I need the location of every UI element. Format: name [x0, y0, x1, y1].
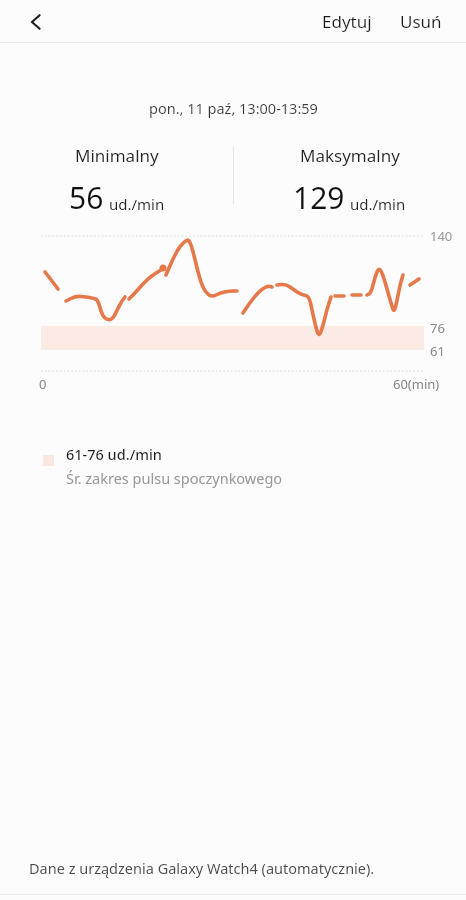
staticText: 76 — [430, 319, 445, 337]
staticText: ud./min — [350, 194, 406, 214]
button[interactable]: Edytuj — [317, 4, 377, 39]
button[interactable]: Usuń — [395, 4, 447, 39]
staticText: pon., 11 paź, 13:00-13:59 — [149, 98, 318, 118]
staticText: 56 — [69, 177, 104, 218]
staticText: Usuń — [400, 10, 442, 33]
staticText: 140 — [430, 227, 453, 245]
staticText: Śr. zakres pulsu spoczynkowego — [66, 468, 283, 488]
staticText: Minimalny — [75, 144, 159, 167]
staticText: Edytuj — [322, 10, 372, 33]
staticText: Dane z urządzenia Galaxy Watch4 (automat… — [29, 858, 375, 878]
staticText: 0 — [39, 375, 47, 393]
staticText: Maksymalny — [300, 144, 400, 167]
button[interactable]: Maksymalny — [233, 144, 466, 218]
staticText: ud./min — [109, 194, 165, 214]
button[interactable]: Back — [14, 0, 58, 43]
button[interactable]: Minimalny — [0, 144, 233, 218]
staticText: 129 — [293, 177, 345, 218]
staticText: 61-76 ud./min — [66, 444, 162, 464]
staticText: 61 — [430, 342, 445, 360]
staticText: 60(min) — [393, 375, 440, 393]
button[interactable]: 61-76 ud./min — [0, 444, 466, 488]
